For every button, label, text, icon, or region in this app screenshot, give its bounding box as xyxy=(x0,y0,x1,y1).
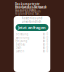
staticText: Dach xyxy=(15,46,21,49)
button[interactable]: Jetzt anfragen xyxy=(15,24,48,31)
staticText: Alle Leistungen rund um Ihr Eigenheim xyxy=(15,6,46,13)
staticText: Jetzt anfragen xyxy=(18,25,46,30)
staticText: ab 0 xyxy=(42,43,48,46)
button[interactable]: Sanierung xyxy=(15,36,48,39)
button[interactable]: Badbau xyxy=(15,43,48,46)
button[interactable]: Dach xyxy=(15,46,48,49)
staticText: Das kompetente xyxy=(15,2,40,6)
staticText: ab 0 xyxy=(42,36,48,39)
staticText: Beratung xyxy=(15,32,28,36)
staticText: ab 0 xyxy=(42,46,48,49)
staticText: Handwerker-Netzwerk xyxy=(15,5,47,9)
staticText: ab 0 xyxy=(42,39,48,43)
staticText: aus einer Hand, regional und fair. xyxy=(15,8,40,16)
button[interactable]: Garten xyxy=(15,49,48,53)
staticText: Garten xyxy=(15,49,24,53)
button[interactable]: Beratung xyxy=(15,32,48,36)
staticText: Badbau xyxy=(15,43,25,46)
staticText: Heizung xyxy=(15,39,27,43)
staticText: Sanierung xyxy=(15,36,29,39)
staticText: Kostenlos und unverbindlich xyxy=(21,16,42,24)
button[interactable]: Heizung xyxy=(15,39,48,43)
staticText: ab 0 xyxy=(42,32,48,36)
staticText: ab 0 xyxy=(42,49,48,53)
